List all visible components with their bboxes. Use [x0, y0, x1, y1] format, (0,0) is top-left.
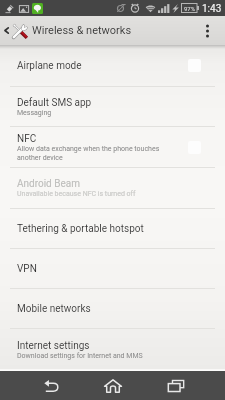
staticText: Airplane mode	[17, 60, 82, 72]
staticText: 97%	[184, 5, 196, 12]
staticText: Default SMS app	[17, 97, 92, 109]
button[interactable]: Tethering & portable hotspot	[0, 209, 225, 248]
staticText: Unavailable because NFC is turned off	[17, 190, 136, 198]
button[interactable]: Mobile networks	[0, 289, 225, 329]
staticText: Mobile networks	[17, 303, 91, 315]
staticText: Download settings for Internet and MMS	[17, 352, 143, 360]
button[interactable]: VPN	[0, 249, 225, 288]
staticText: VPN	[17, 263, 37, 275]
staticText: Wireless & networks	[32, 24, 132, 37]
button[interactable]: Home	[82, 371, 143, 400]
staticText: Allow data exchange when the phone touch…	[17, 145, 160, 161]
button[interactable]: Navigate up	[0, 16, 30, 45]
button[interactable]: Airplane mode	[0, 45, 225, 86]
staticText: Tethering & portable hotspot	[17, 223, 144, 235]
staticText: Android Beam	[17, 178, 80, 190]
button[interactable]: Android Beam	[0, 168, 225, 208]
button[interactable]: Back	[21, 371, 81, 400]
button[interactable]: Default SMS app	[0, 87, 225, 127]
button[interactable]: NFC	[0, 127, 225, 167]
staticText: NFC	[17, 133, 37, 145]
staticText: Internet settings	[17, 340, 90, 352]
button[interactable]: Internet settings	[0, 329, 225, 371]
button[interactable]: Recent apps	[145, 371, 206, 400]
staticText: 1:43	[202, 3, 222, 15]
button[interactable]: More options	[189, 16, 225, 45]
staticText: Messaging	[17, 109, 52, 117]
